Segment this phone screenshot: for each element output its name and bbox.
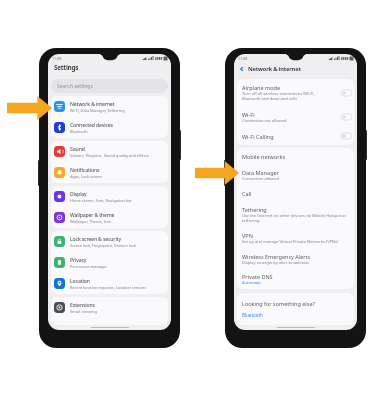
button[interactable]: Airplane mode xyxy=(237,79,354,106)
button[interactable]: Wireless Emergency Alerts xyxy=(237,248,354,269)
staticText: Airplane mode xyxy=(242,84,280,91)
staticText: Looking for something else? xyxy=(242,300,315,307)
button[interactable]: Extensions xyxy=(51,297,168,318)
button[interactable]: Wi-Fi Calling xyxy=(237,127,354,145)
staticText: Display emergency alert broadcasts xyxy=(242,260,309,265)
staticText: Extensions xyxy=(70,302,95,309)
button[interactable]: Wallpaper & theme xyxy=(51,207,168,228)
staticText: Connected devices xyxy=(70,122,113,129)
staticText: Privacy xyxy=(70,257,87,264)
button[interactable]: Private DNS xyxy=(237,269,354,289)
staticText: Call xyxy=(242,190,252,197)
other: Arrow xyxy=(7,96,52,120)
staticText: Bluetooth xyxy=(242,312,263,318)
button[interactable]: Data Manager xyxy=(237,165,354,185)
button[interactable]: Connected devices xyxy=(51,117,168,138)
staticText: Network & internet xyxy=(70,101,115,108)
staticText: Wallpaper, Theme, Icon xyxy=(70,219,112,224)
button[interactable]: Toggle Wi-Fi Calling xyxy=(341,133,352,139)
staticText: Bluetooth xyxy=(70,129,88,134)
staticText: Mobile networks xyxy=(242,153,286,160)
staticText: Network & internet xyxy=(248,65,301,73)
staticText: Settings xyxy=(54,63,79,72)
button[interactable]: Call xyxy=(237,185,354,202)
staticText: VPN xyxy=(242,232,253,239)
staticText: Search settings xyxy=(57,83,93,90)
button[interactable]: Lock screen & security xyxy=(51,231,168,252)
button[interactable]: Privacy xyxy=(51,252,168,273)
button[interactable]: Network & internet xyxy=(51,96,168,117)
staticText: Tethering xyxy=(242,206,267,213)
staticText: Automatic xyxy=(242,280,262,285)
staticText: Home screen, Font, Navigation bar xyxy=(70,198,132,203)
other: Arrow xyxy=(195,161,239,185)
staticText: Screen lock, Fingerprint, Gesture lock xyxy=(70,243,137,248)
staticText: Wireless Emergency Alerts xyxy=(242,253,311,260)
staticText: Sound xyxy=(70,146,85,153)
button[interactable]: Tethering xyxy=(237,202,354,227)
staticText: Turn off all wireless connections (Wi-Fi… xyxy=(242,91,315,101)
staticText: Smart cleaning xyxy=(70,309,97,314)
button[interactable]: Search settings xyxy=(51,79,168,93)
staticText: Wi-Fi, Data Manager, Tethering xyxy=(70,108,125,113)
button[interactable]: VPN xyxy=(237,227,354,248)
button[interactable]: Wi-Fi xyxy=(237,106,354,127)
staticText: Volume, Ringtone, Sound quality and effe… xyxy=(70,153,149,158)
staticText: Connection allowed xyxy=(242,176,279,181)
staticText: Wi-Fi xyxy=(242,111,255,118)
button[interactable]: Display xyxy=(51,186,168,207)
staticText: Private DNS xyxy=(242,273,273,280)
staticText: Permission manager xyxy=(70,264,107,269)
staticText: 11:08 xyxy=(52,56,62,61)
button[interactable]: Sound xyxy=(51,141,168,162)
button[interactable]: Mobile networks xyxy=(237,148,354,165)
staticText: Wallpaper & theme xyxy=(70,212,115,219)
staticText: Data Manager xyxy=(242,169,279,176)
button[interactable]: Toggle Wi-Fi xyxy=(341,114,352,120)
staticText: Set up and manage Virtual Private Networ… xyxy=(242,239,339,244)
staticText: Wi-Fi Calling xyxy=(242,133,274,140)
staticText: 11:08 xyxy=(238,56,248,61)
button[interactable]: Location xyxy=(51,273,168,294)
staticText: Recent location requests, Location servi… xyxy=(70,285,147,290)
button[interactable]: Notifications xyxy=(51,162,168,183)
button[interactable]: Toggle Airplane mode xyxy=(341,90,352,96)
button[interactable]: Back xyxy=(238,65,246,73)
staticText: Display xyxy=(70,191,87,198)
staticText: Use the Internet on other devices via Mo… xyxy=(242,213,347,223)
button[interactable]: Looking for something else? xyxy=(237,293,354,325)
staticText: Lock screen & security xyxy=(70,236,121,243)
staticText: Apps, Lock screen xyxy=(70,174,102,179)
staticText: Connection not allowed xyxy=(242,118,287,123)
staticText: Location xyxy=(70,278,90,285)
staticText: Notifications xyxy=(70,167,100,174)
